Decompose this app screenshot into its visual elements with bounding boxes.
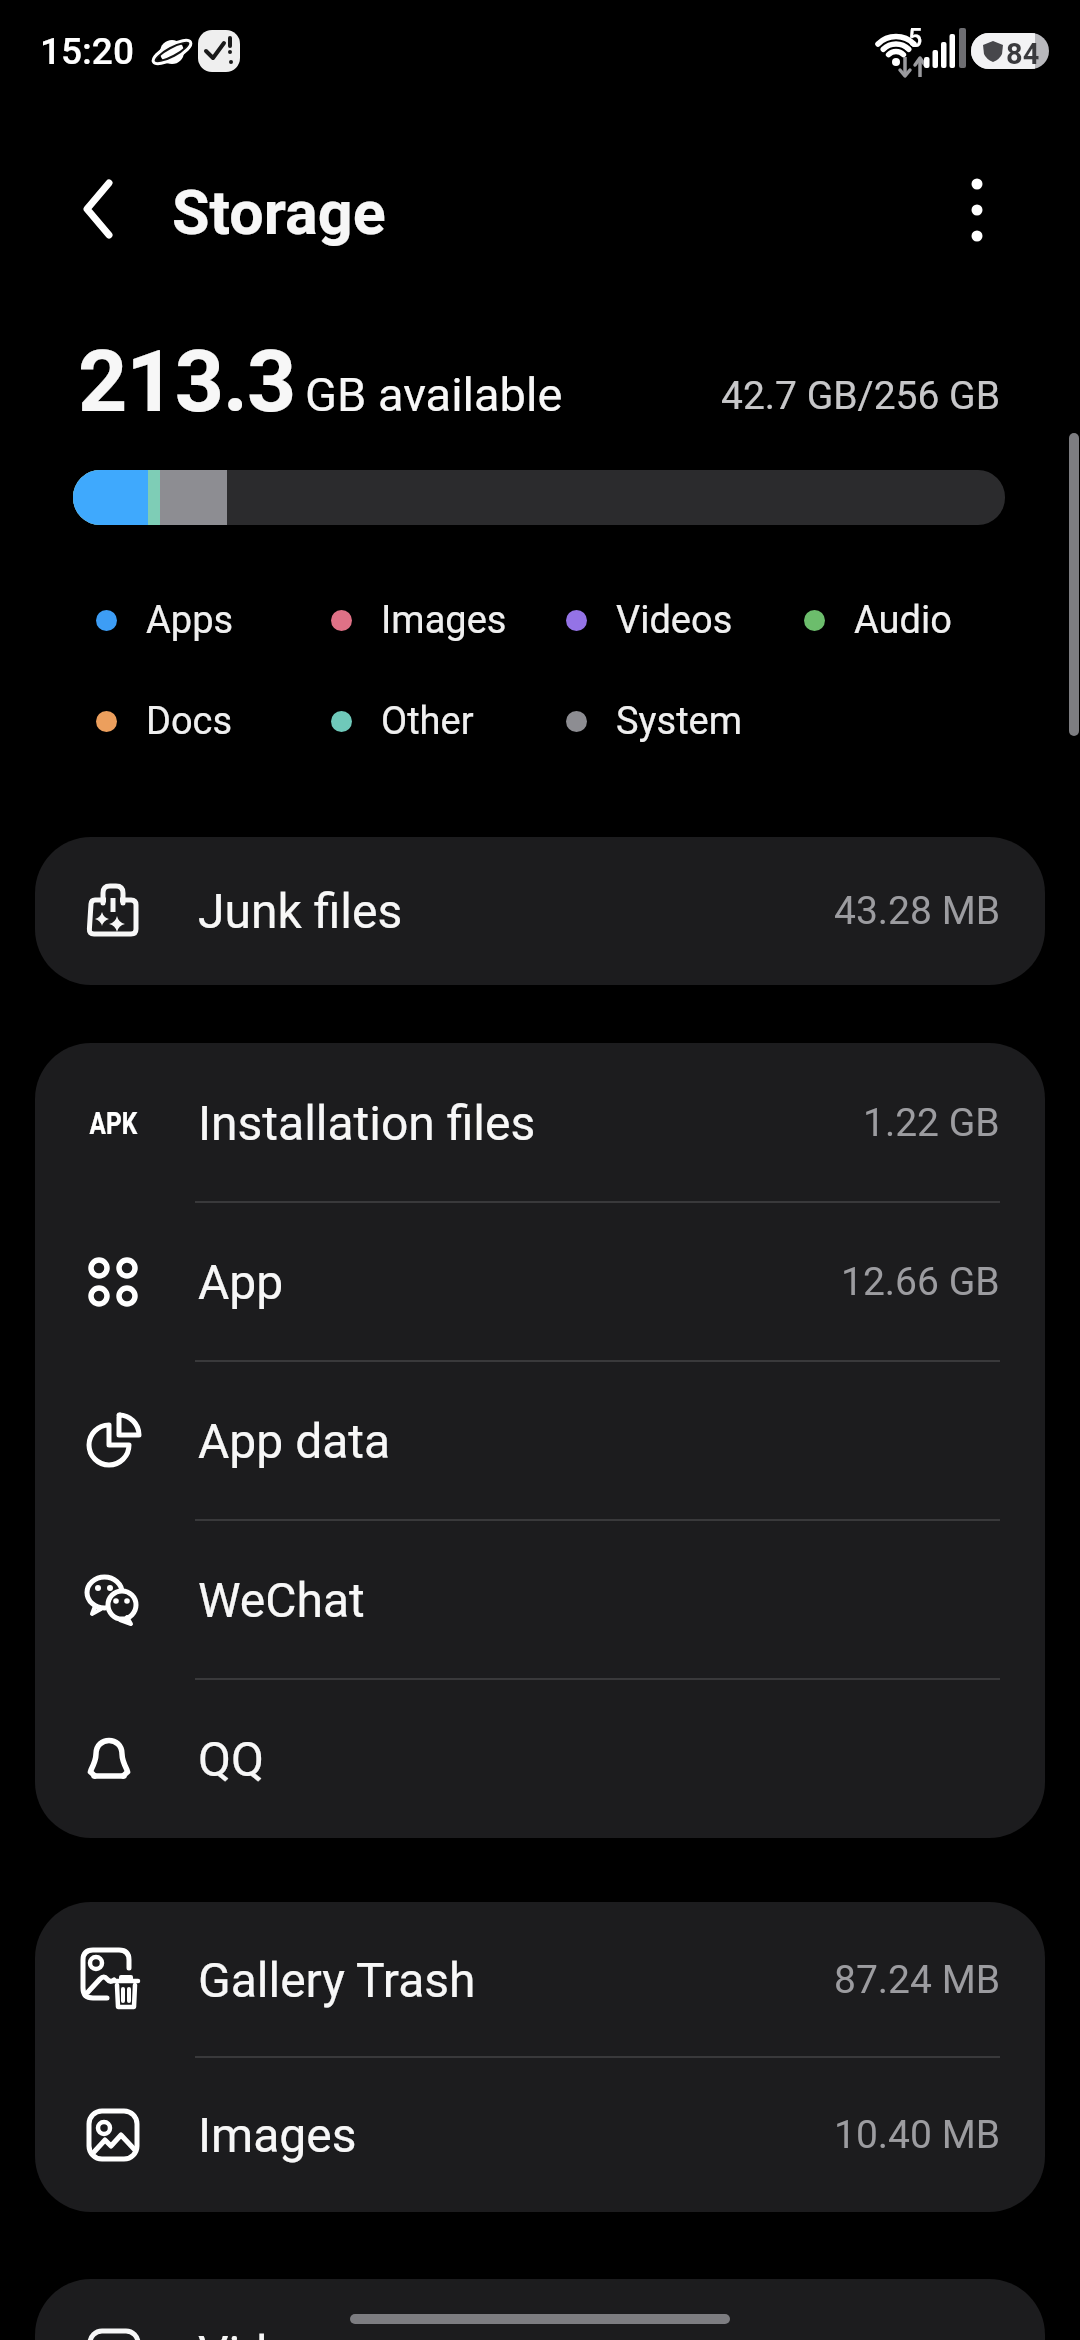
staticText: Gallery Trash — [198, 1952, 476, 2008]
staticText: WeChat — [198, 1572, 365, 1628]
staticText: QQ — [198, 1731, 265, 1787]
button[interactable]: App data — [35, 1361, 1045, 1520]
button[interactable]: Junk files — [35, 837, 1045, 985]
button[interactable]: APK — [35, 1043, 1045, 1202]
staticText: System — [616, 699, 743, 744]
button[interactable] — [937, 150, 1017, 270]
staticText: 5 — [908, 24, 923, 53]
staticText: Images — [381, 598, 507, 643]
button[interactable]: QQ — [35, 1679, 1045, 1838]
staticText: GB available — [305, 367, 563, 422]
staticText: Docs — [146, 699, 233, 744]
button[interactable]: App — [35, 1202, 1045, 1361]
staticText: 15:20 — [40, 30, 134, 73]
staticText: Audio — [854, 598, 952, 643]
staticText: Other — [381, 699, 474, 744]
staticText: 84 — [1006, 37, 1040, 69]
staticText: 43.28 MB — [834, 888, 1000, 934]
button[interactable]: Gallery Trash — [35, 1902, 1045, 2057]
staticText: Videos — [198, 2325, 345, 2340]
staticText: 87.24 MB — [834, 1957, 1000, 2003]
staticText: Apps — [146, 598, 234, 643]
button[interactable]: Videos — [35, 2279, 1045, 2340]
staticText: Videos — [616, 598, 733, 643]
staticText: Images — [198, 2107, 357, 2163]
staticText: App — [198, 1254, 284, 1310]
staticText: 1.22 GB — [863, 1100, 1000, 1146]
staticText: App data — [198, 1413, 391, 1469]
staticText: Storage — [172, 177, 386, 248]
staticText: Junk files — [198, 883, 403, 939]
button[interactable]: Images — [35, 2057, 1045, 2212]
staticText: 213.3 — [78, 331, 296, 432]
staticText: Installation files — [198, 1095, 536, 1151]
staticText: 10.40 MB — [834, 2112, 1000, 2158]
staticText: 12.66 GB — [841, 1259, 1000, 1305]
button[interactable] — [58, 170, 138, 250]
staticText: APK — [90, 1104, 137, 1142]
staticText: 42.7 GB/256 GB — [721, 373, 1000, 419]
button[interactable]: WeChat — [35, 1520, 1045, 1679]
